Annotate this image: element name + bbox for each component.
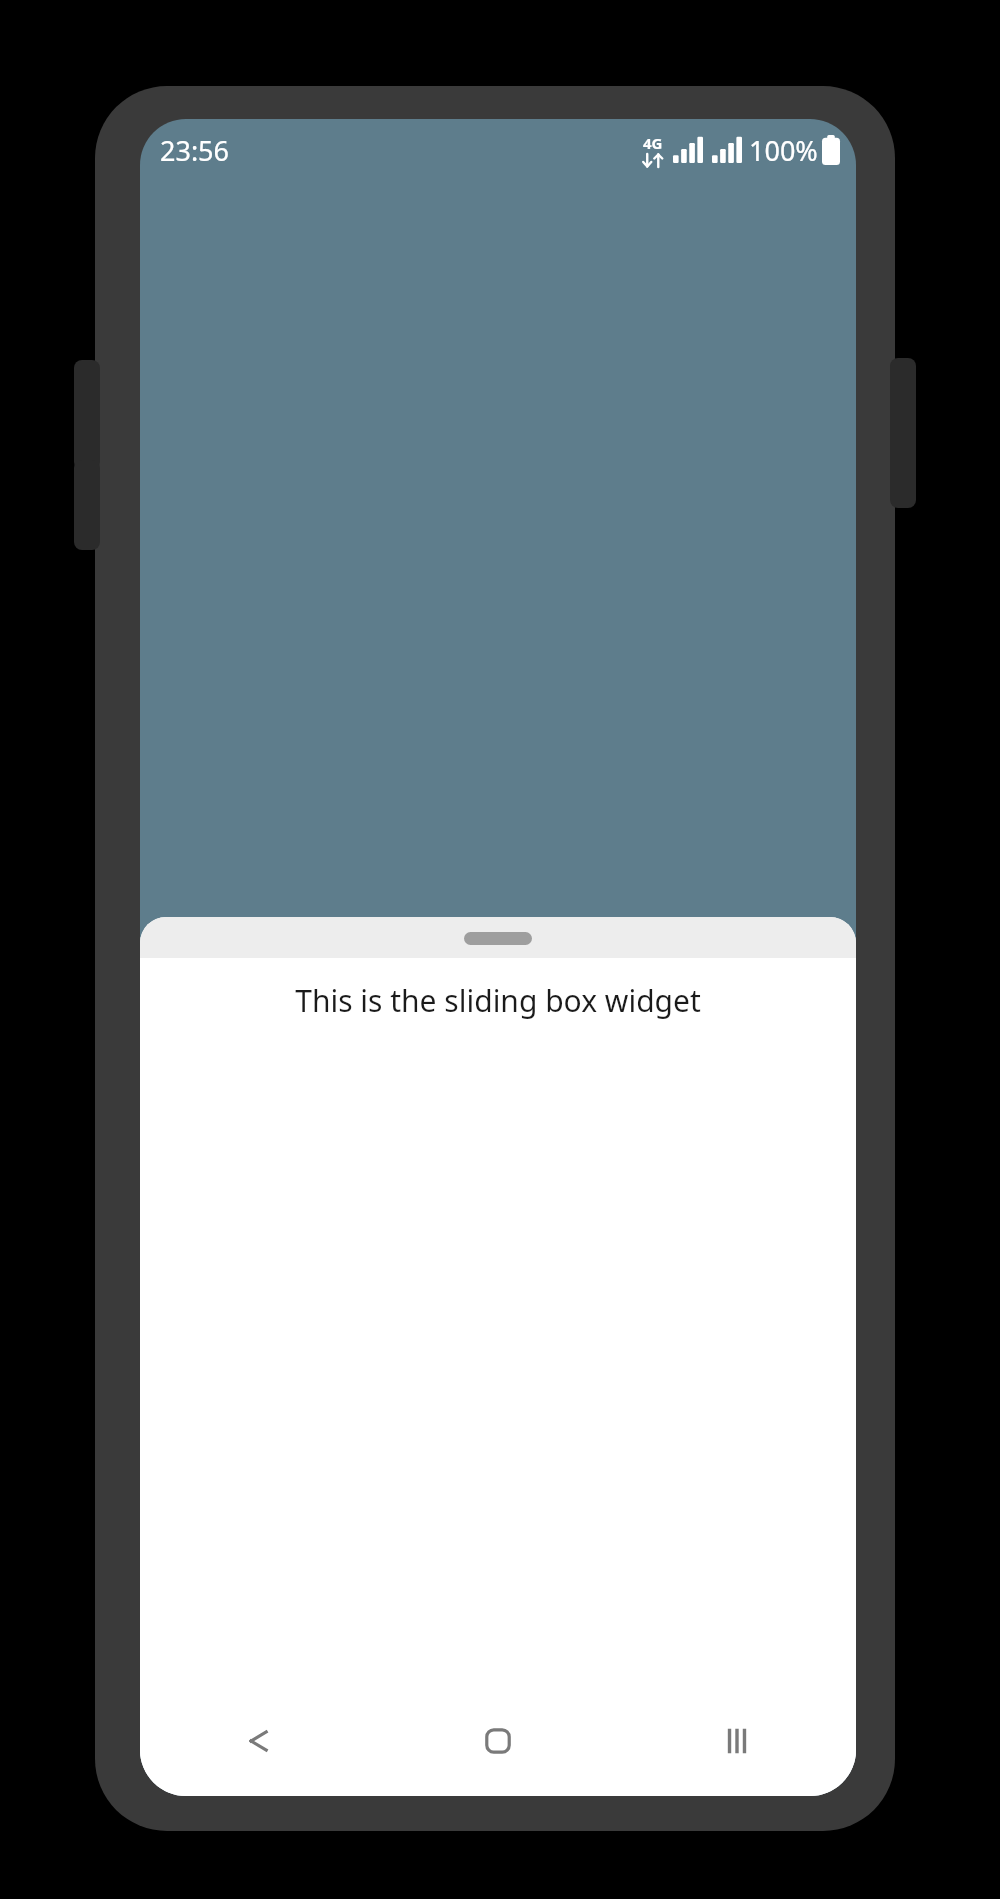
other: Drag handle <box>464 932 532 945</box>
staticText: 100% <box>749 132 818 169</box>
button[interactable]: Drag handle <box>140 917 856 1796</box>
button[interactable]: Recent apps <box>617 1686 856 1796</box>
staticText: 4G <box>643 133 663 153</box>
staticText: 23:56 <box>160 132 230 169</box>
button[interactable]: Home <box>378 1686 617 1796</box>
button[interactable]: Back <box>140 1686 378 1796</box>
staticText: This is the sliding box widget <box>140 980 856 1021</box>
